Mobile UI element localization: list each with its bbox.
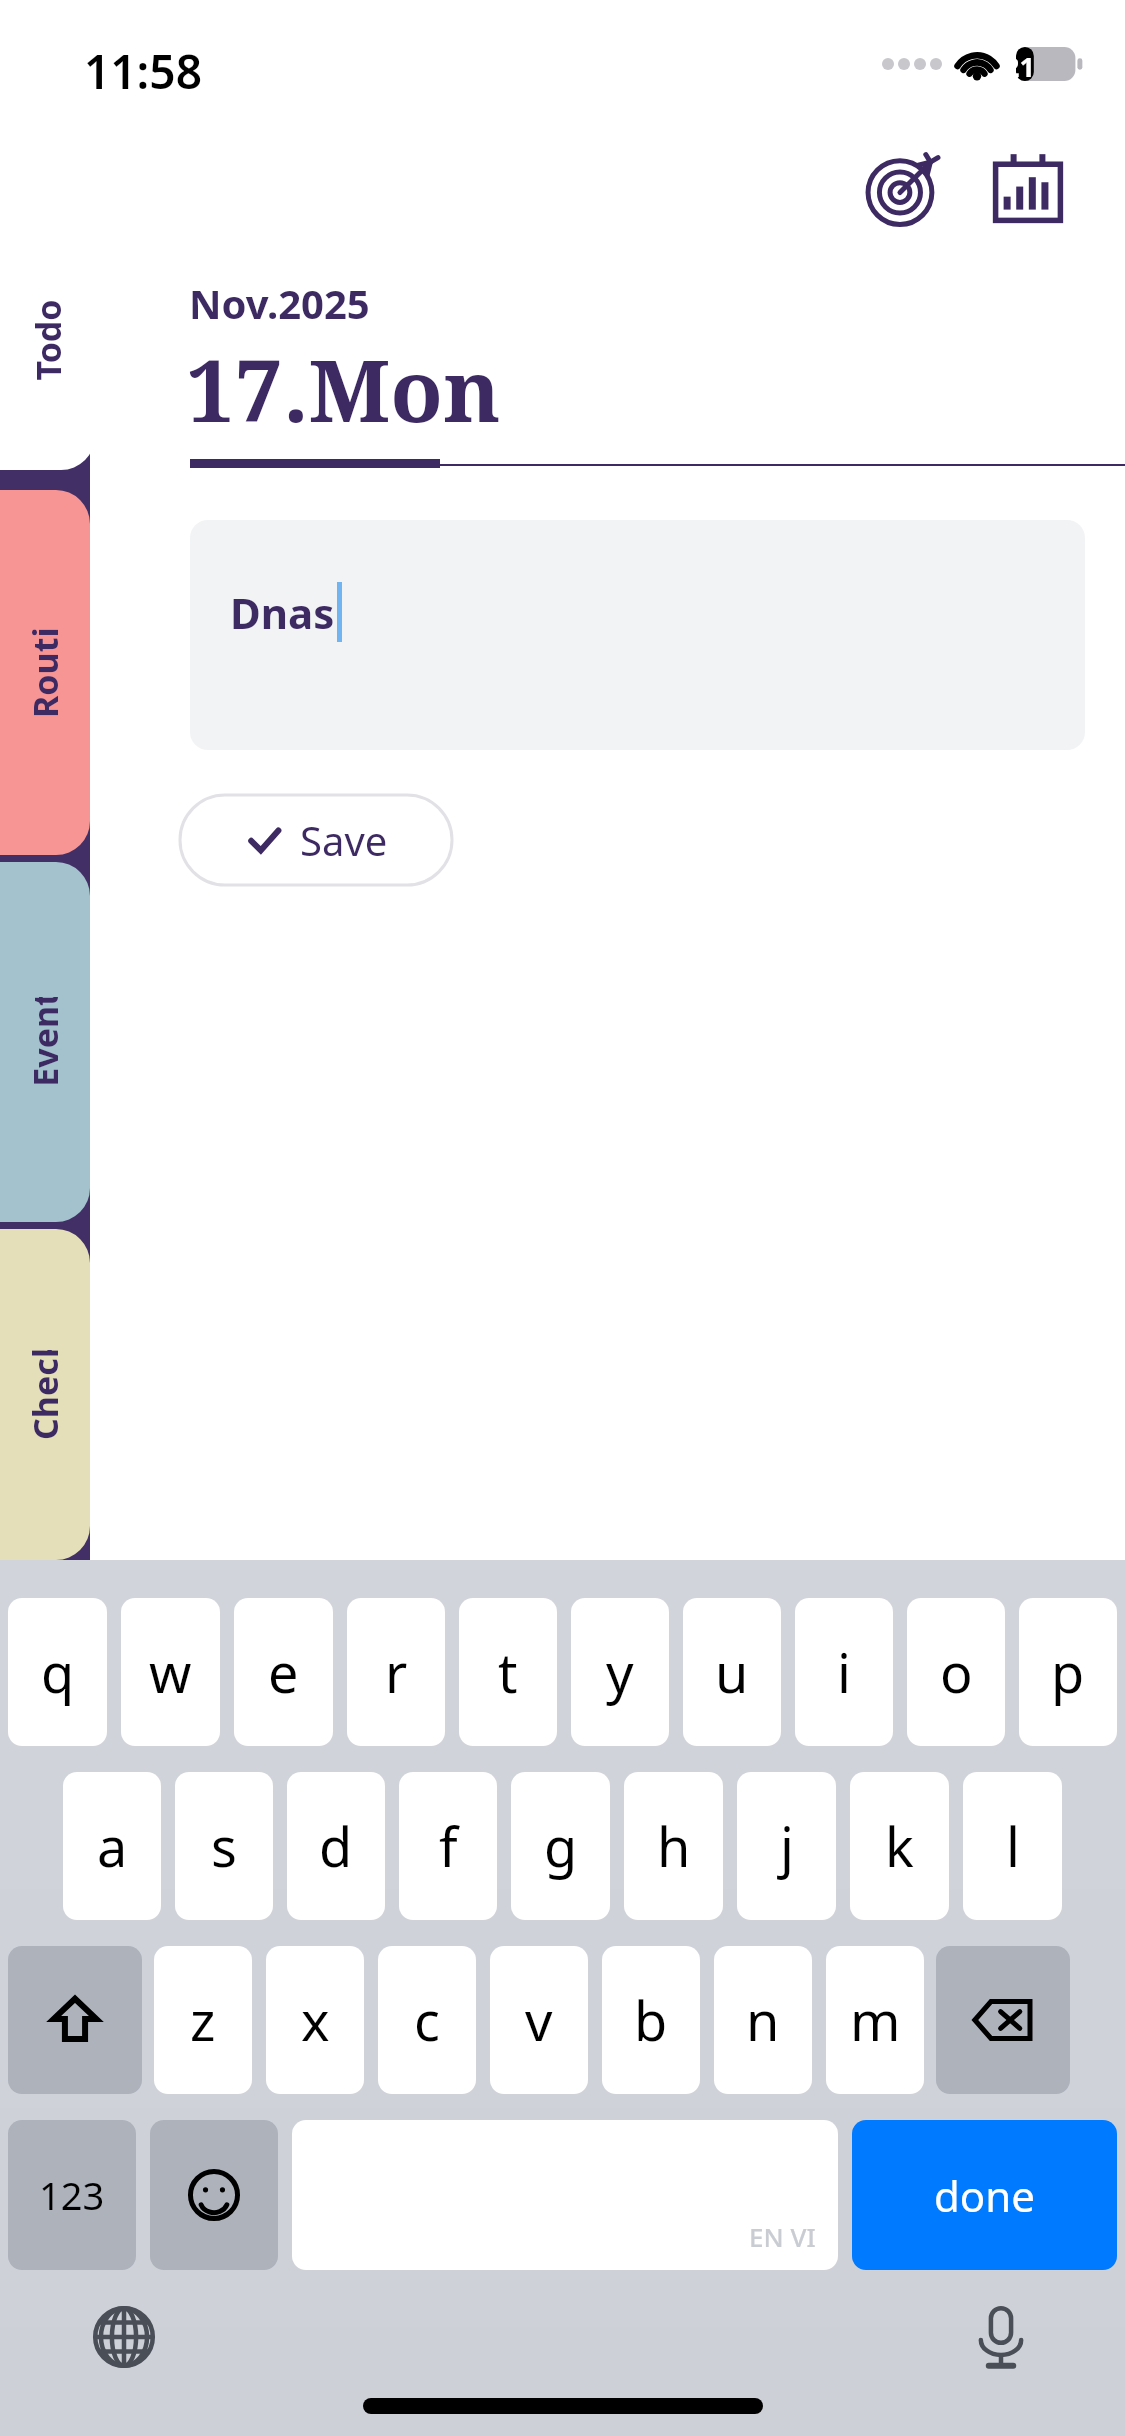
staticText: n [746, 1983, 780, 2057]
button[interactable]: Save [180, 795, 452, 885]
button[interactable]: x [266, 1946, 364, 2094]
staticText: a [97, 1809, 128, 1883]
button[interactable]: z [154, 1946, 252, 2094]
staticText: u [715, 1635, 749, 1709]
button[interactable]: Routine [0, 490, 90, 855]
button[interactable]: Event [0, 862, 90, 1222]
button[interactable]: p [1019, 1598, 1117, 1746]
button[interactable]: n [714, 1946, 812, 2094]
button[interactable]: d [287, 1772, 385, 1920]
button[interactable]: Shift [8, 1946, 142, 2094]
button[interactable]: Checklist [0, 1229, 90, 1560]
staticText: Checklist [22, 1350, 68, 1440]
button[interactable]: u [683, 1598, 781, 1746]
button[interactable]: v [490, 1946, 588, 2094]
staticText: 11:58 [84, 40, 202, 103]
button[interactable]: done [852, 2120, 1117, 2270]
button[interactable]: Goals [855, 140, 951, 236]
staticText: z [190, 1983, 216, 2057]
staticText: v [525, 1983, 553, 2057]
staticText: r [385, 1635, 408, 1709]
staticText: i [837, 1635, 851, 1709]
button[interactable]: m [826, 1946, 924, 2094]
button[interactable]: q [8, 1598, 107, 1746]
button[interactable]: Todo [0, 150, 95, 470]
staticText: b [634, 1983, 668, 2057]
staticText: t [498, 1635, 518, 1709]
button[interactable]: g [511, 1772, 610, 1920]
staticText: e [268, 1635, 299, 1709]
staticText: h [657, 1809, 691, 1883]
staticText: m [850, 1983, 901, 2057]
button[interactable]: c [378, 1946, 476, 2094]
staticText: Event [22, 997, 68, 1087]
button[interactable]: f [399, 1772, 497, 1920]
button[interactable]: Change keyboard [88, 2301, 160, 2373]
button[interactable]: o [907, 1598, 1005, 1746]
button[interactable]: i [795, 1598, 893, 1746]
staticText: Save [300, 813, 388, 867]
staticText: EN VI [749, 2219, 816, 2254]
staticText: s [211, 1809, 237, 1883]
staticText: 123 [39, 2169, 105, 2221]
staticText: 21 [1004, 48, 1035, 85]
staticText: Nov.2025 [189, 276, 370, 330]
staticText: p [1051, 1635, 1085, 1709]
button[interactable]: Backspace [936, 1946, 1070, 2094]
staticText: c [414, 1983, 440, 2057]
staticText: f [439, 1809, 458, 1883]
button[interactable]: Dnas [190, 520, 1085, 750]
button[interactable]: w [121, 1598, 220, 1746]
button[interactable]: t [459, 1598, 557, 1746]
button[interactable]: l [963, 1772, 1062, 1920]
staticText: Todo [25, 299, 71, 381]
staticText: q [41, 1635, 75, 1709]
button[interactable]: j [737, 1772, 836, 1920]
staticText: g [544, 1809, 578, 1883]
button[interactable]: Dictation [965, 2301, 1037, 2373]
button[interactable]: e [234, 1598, 333, 1746]
button[interactable]: r [347, 1598, 445, 1746]
button[interactable]: b [602, 1946, 700, 2094]
button[interactable]: y [571, 1598, 669, 1746]
button[interactable]: Emoji [150, 2120, 278, 2270]
staticText: x [301, 1983, 330, 2057]
button[interactable]: k [850, 1772, 949, 1920]
button[interactable]: h [624, 1772, 723, 1920]
button[interactable]: 123 [8, 2120, 136, 2270]
staticText: y [606, 1635, 634, 1709]
staticText: Routine [22, 628, 68, 718]
button[interactable]: a [63, 1772, 161, 1920]
staticText: done [934, 2167, 1035, 2224]
staticText: w [149, 1635, 192, 1709]
staticText: 17.Mon [186, 330, 501, 447]
button[interactable]: s [175, 1772, 273, 1920]
button[interactable]: Statistics [980, 140, 1076, 236]
staticText: d [319, 1809, 353, 1883]
staticText: Dnas [230, 584, 335, 641]
staticText: k [885, 1809, 914, 1883]
staticText: l [1006, 1809, 1020, 1883]
button[interactable]: EN VI [292, 2120, 838, 2270]
staticText: o [940, 1635, 973, 1709]
staticText: j [780, 1809, 794, 1883]
